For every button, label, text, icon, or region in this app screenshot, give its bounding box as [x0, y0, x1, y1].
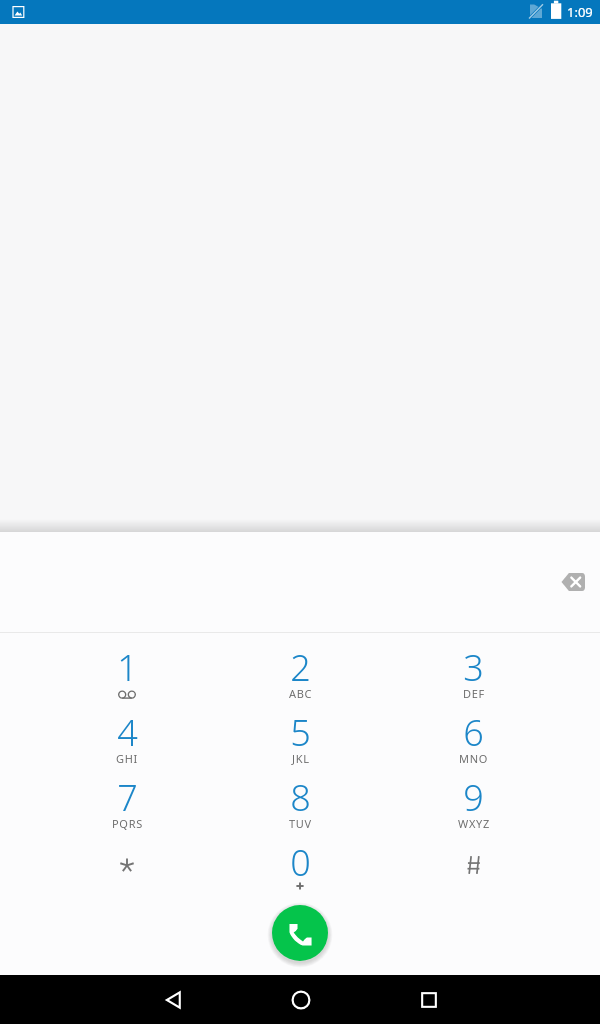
- staticText: 1:09: [567, 3, 593, 21]
- button[interactable]: Recent apps: [385, 975, 473, 1024]
- staticText: 1: [117, 643, 138, 692]
- staticText: DEF: [463, 686, 485, 701]
- button[interactable]: Back: [130, 975, 218, 1024]
- staticText: JKL: [292, 751, 310, 766]
- button[interactable]: [387, 828, 560, 893]
- staticText: MNO: [459, 751, 489, 766]
- staticText: 9: [463, 773, 484, 822]
- staticText: 4: [117, 708, 138, 757]
- staticText: PQRS: [112, 816, 143, 831]
- staticText: ABC: [289, 686, 313, 701]
- staticText: 7: [117, 773, 138, 822]
- staticText: WXYZ: [458, 816, 490, 831]
- staticText: 0: [290, 838, 311, 887]
- button[interactable]: Home: [257, 975, 345, 1024]
- staticText: 5: [290, 708, 311, 757]
- button[interactable]: 4: [40, 698, 214, 763]
- button[interactable]: 1: [40, 633, 214, 698]
- button[interactable]: [40, 828, 214, 893]
- button[interactable]: 3: [387, 633, 560, 698]
- staticText: 2: [290, 643, 311, 692]
- staticText: 3: [463, 643, 484, 692]
- button[interactable]: 2: [214, 633, 387, 698]
- button[interactable]: Backspace: [551, 560, 595, 604]
- staticText: TUV: [289, 816, 312, 831]
- button[interactable]: 0: [214, 828, 387, 893]
- button[interactable]: 9: [387, 763, 560, 828]
- button[interactable]: 6: [387, 698, 560, 763]
- button[interactable]: 5: [214, 698, 387, 763]
- button[interactable]: 8: [214, 763, 387, 828]
- staticText: 8: [290, 773, 311, 822]
- button[interactable]: Call: [272, 905, 328, 961]
- button[interactable]: 7: [40, 763, 214, 828]
- staticText: GHI: [116, 751, 138, 766]
- staticText: 6: [463, 708, 484, 757]
